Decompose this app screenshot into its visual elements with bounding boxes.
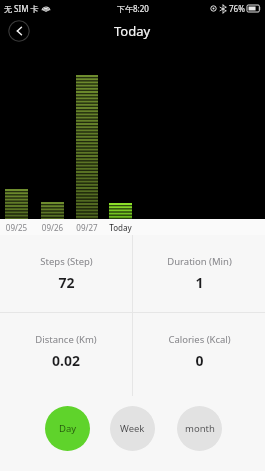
- staticText: 下午8:20: [117, 3, 149, 14]
- staticText: 76%: [229, 3, 245, 14]
- button[interactable]: Calories (Kcal): [133, 313, 265, 390]
- staticText: 09/25: [5, 222, 28, 233]
- staticText: 09/27: [76, 222, 98, 233]
- button[interactable]: Duration (Min): [133, 235, 265, 312]
- staticText: Today: [114, 22, 151, 40]
- button[interactable]: Steps (Step): [0, 235, 132, 312]
- staticText: Duration (Min): [167, 255, 232, 268]
- staticText: Today: [109, 222, 132, 233]
- button[interactable]: Distance (Km): [0, 313, 132, 390]
- button[interactable]: Week: [110, 406, 155, 451]
- staticText: month: [185, 422, 215, 435]
- staticText: Distance (Km): [35, 333, 97, 346]
- staticText: 09/26: [41, 222, 64, 233]
- button[interactable]: Day: [45, 406, 90, 451]
- staticText: Week: [120, 422, 145, 435]
- staticText: 0.02: [52, 351, 80, 370]
- staticText: Day: [59, 422, 77, 435]
- staticText: 72: [58, 273, 75, 292]
- staticText: Calories (Kcal): [168, 333, 231, 346]
- staticText: Steps (Step): [40, 255, 93, 268]
- staticText: 无 SIM 卡: [4, 3, 39, 14]
- staticText: 1: [195, 273, 204, 292]
- button[interactable]: month: [177, 406, 222, 451]
- staticText: 0: [195, 351, 204, 370]
- button[interactable]: Back: [8, 20, 30, 42]
